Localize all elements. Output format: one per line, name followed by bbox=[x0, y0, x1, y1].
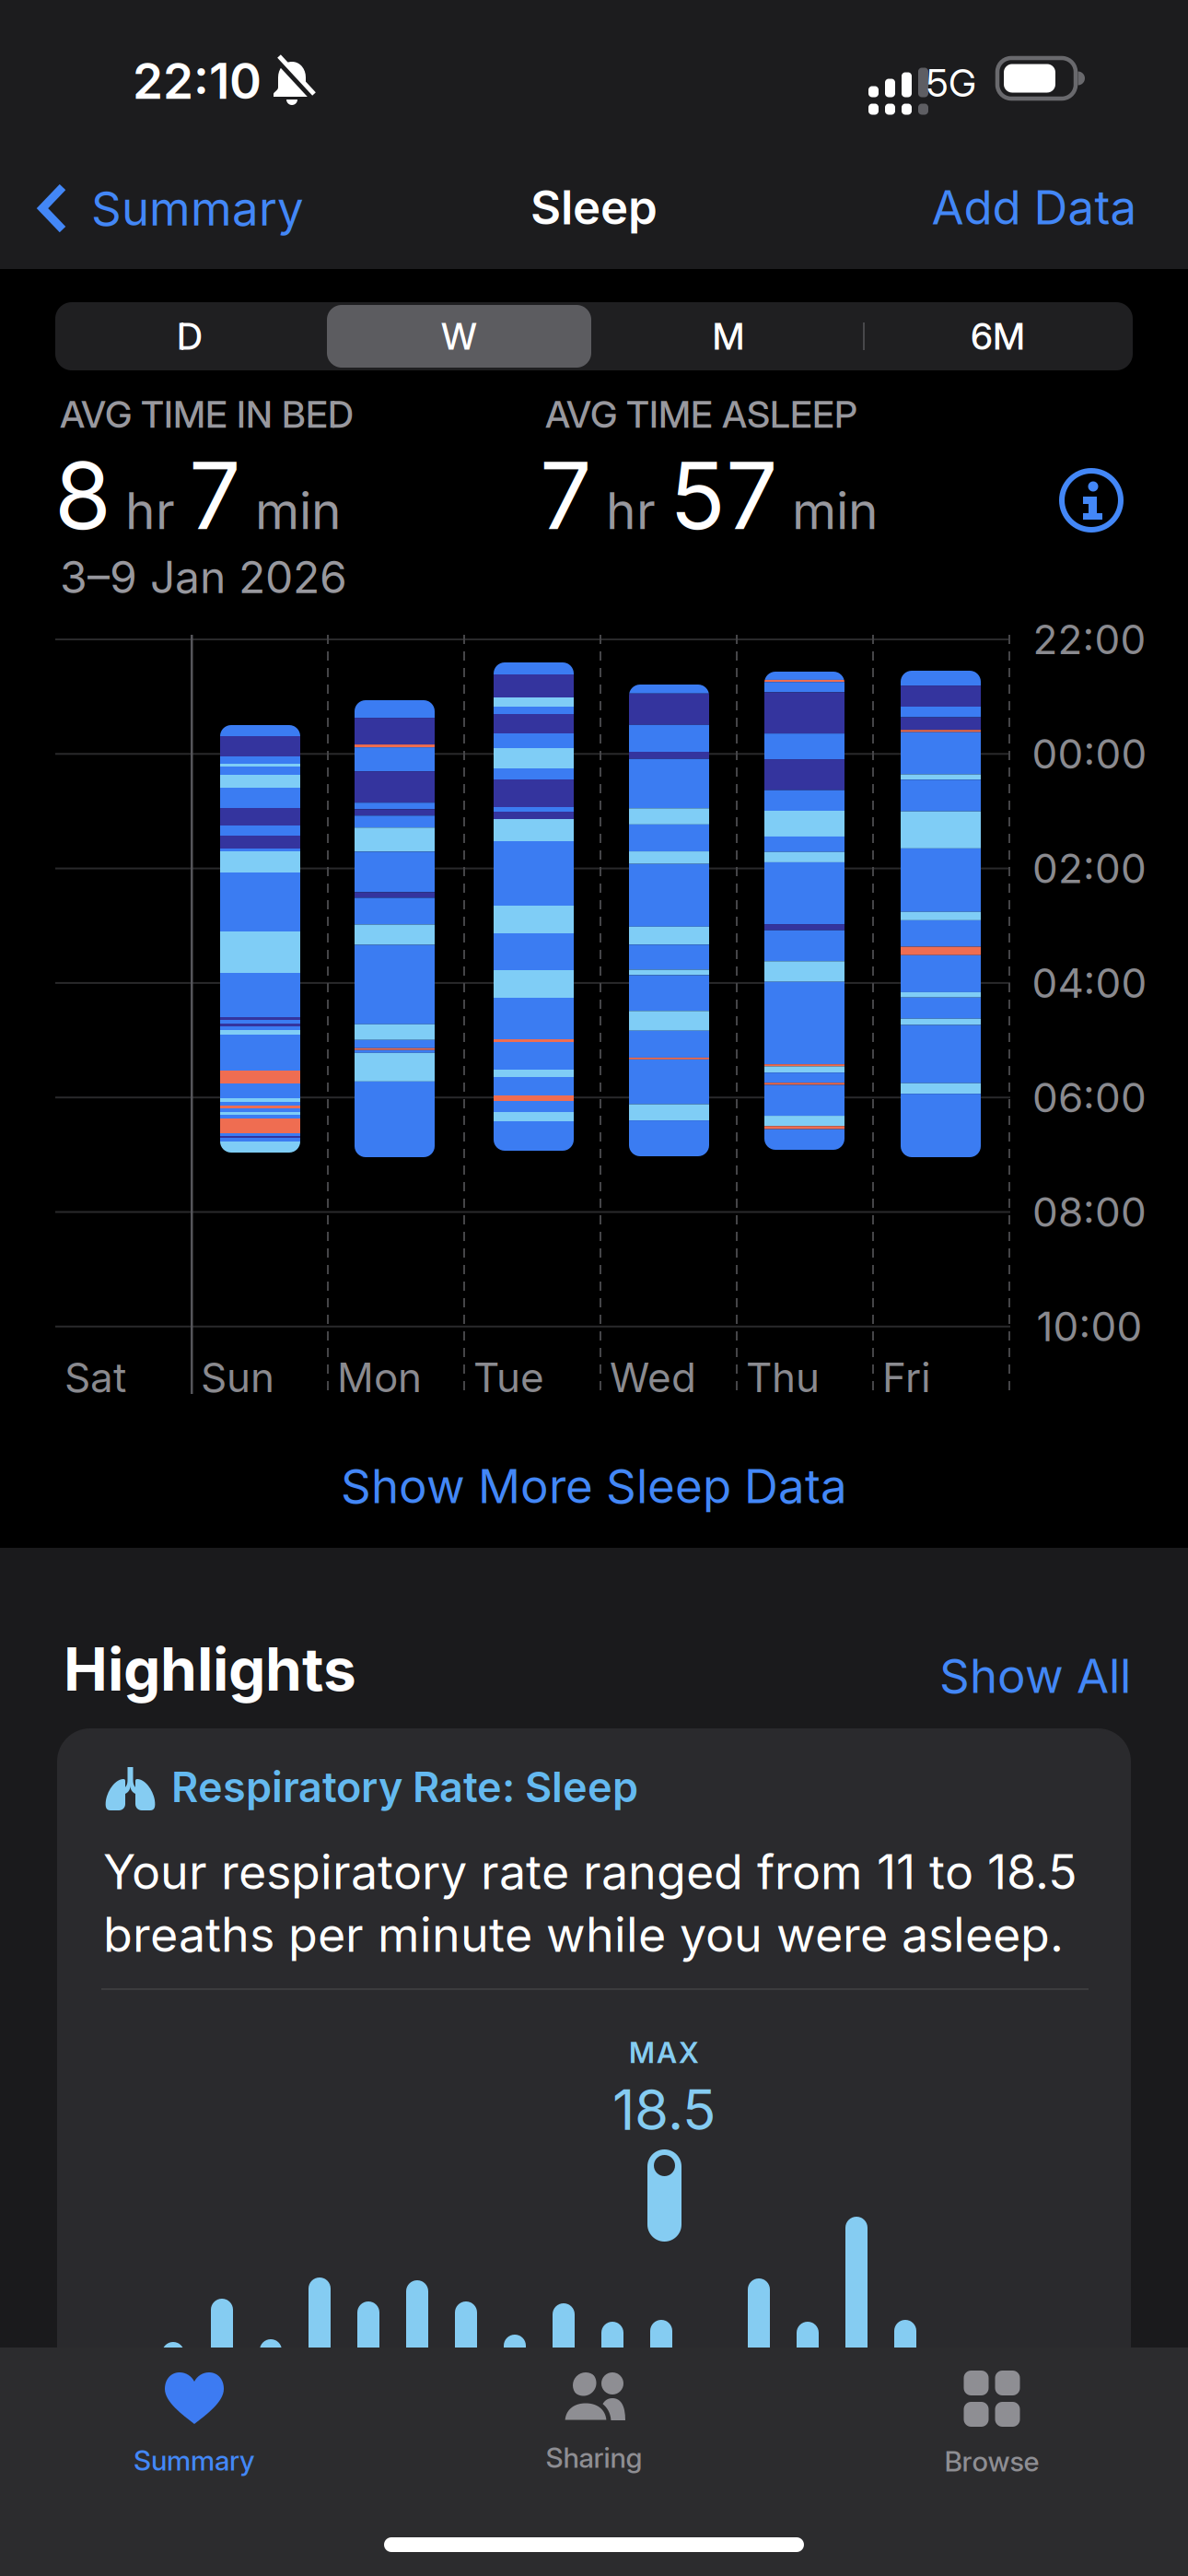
button[interactable]: 6M bbox=[863, 302, 1132, 370]
button[interactable]: W bbox=[325, 302, 594, 370]
staticText: D bbox=[177, 315, 203, 358]
staticText: M bbox=[712, 315, 745, 358]
button[interactable]: Show All bbox=[939, 1648, 1131, 1704]
staticText: Mon bbox=[337, 1353, 422, 1401]
button[interactable]: Show More Sleep Data bbox=[341, 1458, 847, 1514]
staticText: Show All bbox=[939, 1648, 1131, 1704]
staticText: Thu bbox=[746, 1353, 820, 1401]
staticText: 5G bbox=[926, 61, 976, 105]
staticText: 04:00 bbox=[1032, 959, 1147, 1007]
staticText: Sun bbox=[201, 1353, 274, 1401]
staticText: 00:00 bbox=[1032, 730, 1147, 778]
staticText: Summary bbox=[91, 181, 304, 236]
staticText: 08:00 bbox=[1032, 1188, 1147, 1236]
staticText: Fri bbox=[882, 1353, 931, 1401]
staticText: 02:00 bbox=[1032, 844, 1147, 892]
button[interactable]: Summary bbox=[29, 2371, 360, 2527]
staticText: 18.5 bbox=[612, 2077, 716, 2142]
button[interactable]: Summary bbox=[38, 181, 304, 236]
staticText: 7 bbox=[189, 441, 241, 550]
staticText: 7 bbox=[540, 441, 592, 550]
staticText: 22:00 bbox=[1033, 615, 1146, 663]
staticText: MAX bbox=[629, 2036, 699, 2070]
staticText: Browse bbox=[944, 2445, 1039, 2478]
staticText: Sharing bbox=[546, 2441, 642, 2474]
staticText: 8 bbox=[54, 441, 111, 550]
staticText: Respiratory Rate: Sleep bbox=[171, 1762, 638, 1811]
staticText: Sleep bbox=[530, 180, 658, 235]
staticText: Highlights bbox=[64, 1634, 356, 1704]
staticText: hr bbox=[125, 481, 175, 541]
staticText: AVG TIME IN BED bbox=[60, 392, 354, 436]
staticText: breaths per minute while you were asleep… bbox=[103, 1906, 1064, 1963]
staticText: Show More Sleep Data bbox=[341, 1458, 847, 1514]
staticText: hr bbox=[606, 481, 656, 541]
staticText: 3–9 Jan 2026 bbox=[60, 551, 347, 603]
staticText: min bbox=[255, 481, 341, 541]
button[interactable] bbox=[1060, 469, 1123, 532]
button[interactable]: Sharing bbox=[428, 2371, 760, 2527]
button[interactable]: D bbox=[55, 302, 324, 370]
staticText: Tue bbox=[473, 1353, 544, 1401]
staticText: Your respiratory rate ranged from 11 to … bbox=[103, 1844, 1077, 1900]
staticText: 57 bbox=[670, 441, 778, 550]
button[interactable]: M bbox=[594, 302, 863, 370]
staticText: Summary bbox=[134, 2444, 255, 2477]
staticText: 22:10 bbox=[133, 52, 262, 110]
staticText: 10:00 bbox=[1037, 1303, 1142, 1350]
staticText: Wed bbox=[610, 1353, 696, 1401]
staticText: Sat bbox=[64, 1353, 126, 1401]
staticText: 06:00 bbox=[1032, 1074, 1147, 1121]
button[interactable]: Add Data bbox=[932, 180, 1137, 235]
staticText: Add Data bbox=[932, 180, 1137, 235]
staticText: min bbox=[792, 481, 878, 541]
staticText: AVG TIME ASLEEP bbox=[545, 392, 857, 436]
staticText: 6M bbox=[971, 315, 1025, 358]
staticText: W bbox=[441, 315, 477, 358]
button[interactable]: Respiratory Rate: Sleep bbox=[57, 1728, 1131, 2576]
button[interactable]: Browse bbox=[826, 2371, 1158, 2527]
